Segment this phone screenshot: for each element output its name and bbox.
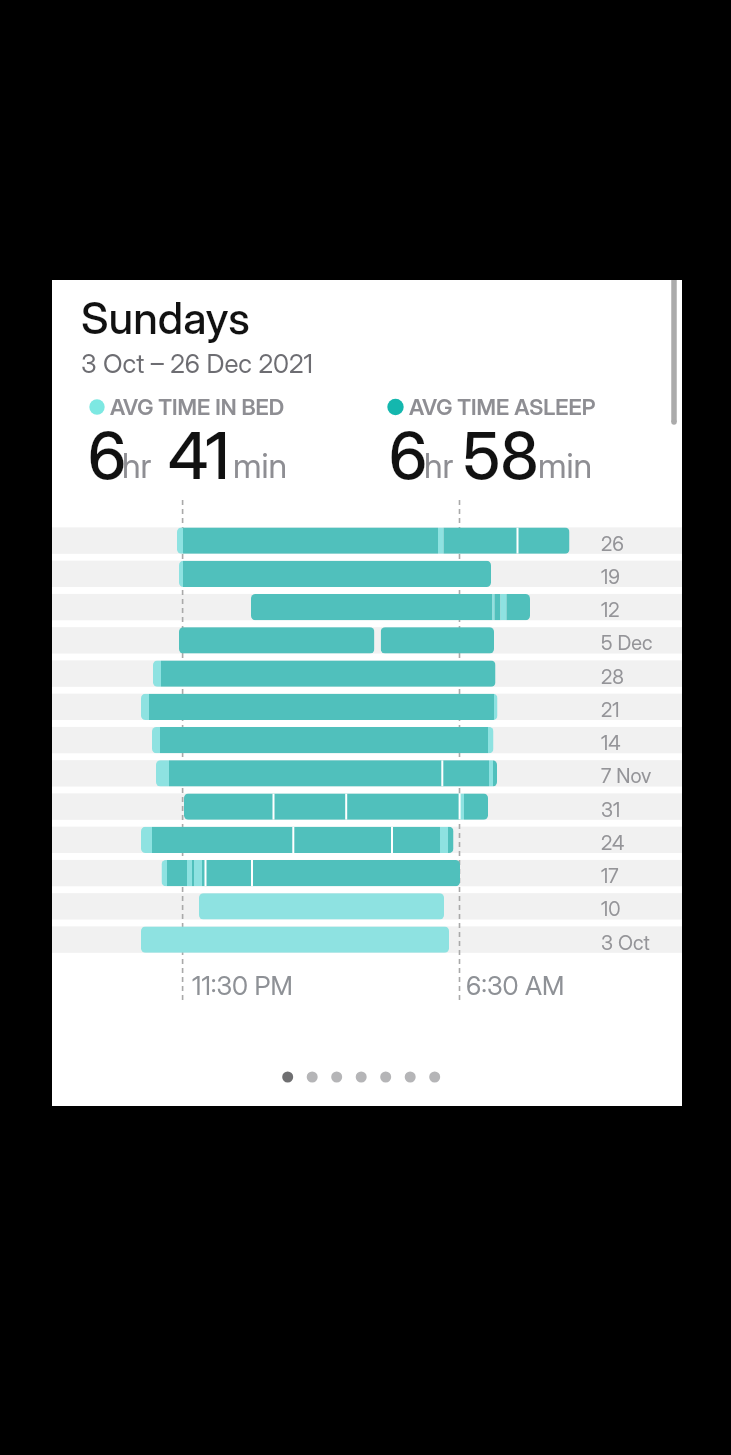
staticText: AVG TIME IN BED: [110, 394, 285, 421]
staticText: min: [233, 445, 288, 486]
staticText: hr: [122, 445, 152, 486]
staticText: 21: [601, 698, 620, 722]
staticText: 28: [601, 665, 624, 689]
staticText: 31: [601, 798, 621, 822]
staticText: 12: [601, 598, 620, 622]
staticText: 24: [601, 831, 625, 855]
staticText: 3 Oct: [601, 931, 650, 955]
staticText: 17: [601, 864, 619, 888]
staticText: 14: [601, 731, 621, 755]
staticText: 7 Nov: [601, 764, 652, 788]
staticText: 3 Oct – 26 Dec 2021: [81, 348, 313, 379]
staticText: 58: [463, 417, 539, 494]
staticText: Sundays: [81, 291, 250, 344]
staticText: 19: [601, 565, 620, 589]
button[interactable]: [52, 280, 682, 1106]
staticText: 11:30 PM: [192, 970, 293, 1001]
staticText: 5 Dec: [601, 631, 653, 655]
staticText: 41: [168, 417, 230, 494]
staticText: 6:30 AM: [466, 970, 565, 1001]
staticText: AVG TIME ASLEEP: [409, 394, 596, 421]
staticText: 6: [389, 417, 428, 494]
staticText: 26: [601, 532, 624, 556]
staticText: 6: [88, 417, 127, 494]
staticText: 10: [601, 897, 621, 921]
staticText: min: [538, 445, 593, 486]
staticText: hr: [424, 445, 454, 486]
